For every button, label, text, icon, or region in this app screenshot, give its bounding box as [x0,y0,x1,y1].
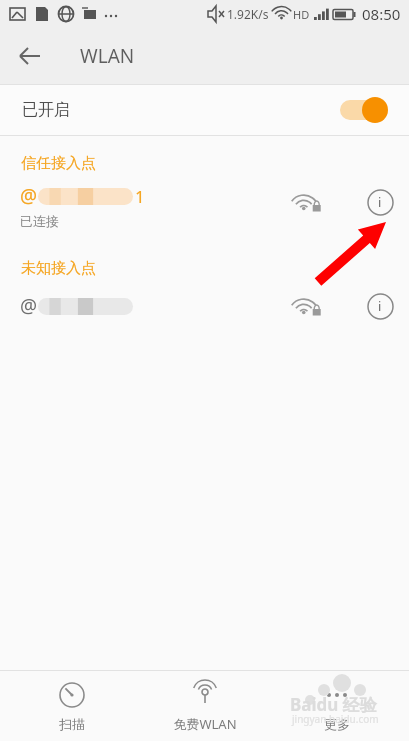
button[interactable]: 更多 [277,671,397,741]
staticText: WLAN [80,43,135,69]
button[interactable]: 已开启 [0,85,409,135]
button[interactable]: Back [0,28,409,84]
staticText: 更多 [324,716,350,732]
staticText: 未知接入点 [21,259,96,278]
staticText: 扫描 [59,716,85,732]
staticText: HD [293,7,310,22]
staticText: Baidu 经验 [290,693,377,716]
staticText: 08:50 [362,4,401,24]
button[interactable]: @ [0,280,409,332]
staticText: @ [20,293,38,319]
staticText: 免费WLAN [173,715,237,733]
staticText: 信任接入点 [21,154,96,173]
button[interactable]: 扫描 [12,671,132,741]
staticText: i [378,297,382,315]
button[interactable]: 免费WLAN [145,671,265,741]
staticText: 已连接 [20,213,59,229]
button[interactable]: @ [0,175,409,237]
button[interactable]: Network info [360,182,400,222]
staticText: 已开启 [22,100,70,120]
staticText: jingyan.baidu.com [292,712,379,726]
staticText: 1 [135,185,145,208]
staticText: 1.92K/s [227,6,269,22]
staticText: @ [20,183,38,209]
staticText: i [378,193,382,211]
button[interactable]: Network info [360,286,400,326]
button[interactable]: Back [8,34,52,78]
